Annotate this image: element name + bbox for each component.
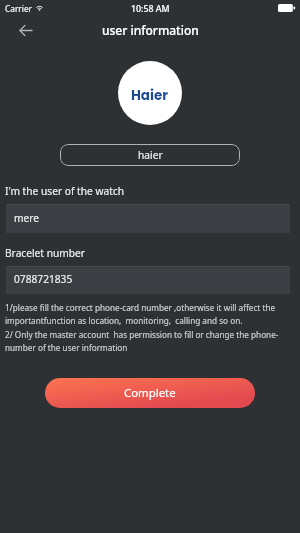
staticText: I'm the user of the watch (5, 184, 125, 198)
staticText: Haier (131, 86, 169, 105)
staticText: Carrier (5, 3, 32, 14)
button[interactable]: Back (13, 18, 37, 42)
staticText: Bracelet number (5, 246, 86, 260)
button[interactable]: Complete (45, 378, 255, 408)
button[interactable]: mere (6, 204, 290, 233)
staticText: haier (138, 148, 163, 162)
staticText: 0788721835 (14, 272, 73, 286)
button[interactable]: haier (60, 144, 240, 166)
staticText: 2/ Only the master account has permissio… (5, 329, 279, 353)
staticText: mere (14, 211, 40, 225)
button[interactable]: 0788721835 (6, 266, 290, 294)
staticText: 10:58 AM (131, 3, 170, 15)
staticText: user information (102, 22, 199, 38)
staticText: 1/please fill the correct phone-card num… (5, 302, 276, 326)
staticText: Complete (124, 385, 176, 401)
